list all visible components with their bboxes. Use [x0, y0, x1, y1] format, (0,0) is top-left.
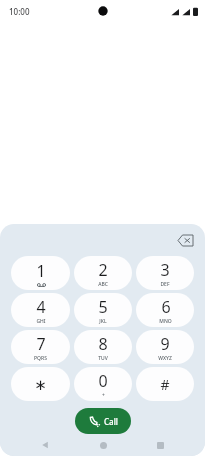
staticText: WXYZ — [158, 355, 172, 362]
button[interactable]: 9 — [136, 330, 194, 364]
staticText: 0 — [98, 370, 108, 392]
button[interactable]: Recents — [147, 434, 173, 456]
button[interactable]: 4 — [11, 293, 70, 327]
button[interactable]: 0 — [74, 367, 132, 401]
staticText: TUV — [98, 355, 108, 362]
staticText: ∗ — [34, 376, 47, 393]
staticText: Call — [104, 416, 118, 427]
button[interactable]: 8 — [74, 330, 132, 364]
staticText: 6 — [161, 296, 171, 318]
staticText: # — [160, 375, 170, 394]
staticText: JKL — [99, 318, 107, 325]
button[interactable]: ∗ — [11, 367, 70, 401]
staticText: PQRS — [34, 355, 47, 362]
staticText: + — [102, 392, 105, 399]
staticText: 4 — [36, 296, 46, 318]
button[interactable]: 3 — [136, 256, 194, 290]
staticText: 9 — [160, 333, 170, 355]
staticText: 3 — [160, 259, 170, 281]
button[interactable]: 1 — [11, 256, 70, 290]
staticText: 2 — [98, 259, 108, 281]
button[interactable]: 6 — [136, 293, 194, 327]
staticText: 10:00 — [9, 6, 30, 17]
staticText: 8 — [98, 333, 108, 355]
button[interactable]: # — [136, 367, 194, 401]
staticText: 5 — [98, 296, 108, 318]
button[interactable]: 7 — [11, 330, 70, 364]
staticText: GHI — [36, 318, 46, 325]
staticText: ABC — [98, 281, 108, 288]
button[interactable]: Call — [75, 408, 131, 434]
staticText: MNO — [159, 318, 172, 325]
staticText: DEF — [160, 281, 170, 288]
staticText: 7 — [36, 333, 46, 355]
button[interactable]: Back — [32, 434, 58, 456]
button[interactable]: Home — [90, 434, 116, 456]
button[interactable]: Backspace — [173, 228, 197, 252]
button[interactable]: 2 — [74, 256, 132, 290]
button[interactable]: 5 — [74, 293, 132, 327]
staticText: 1 — [36, 260, 46, 282]
